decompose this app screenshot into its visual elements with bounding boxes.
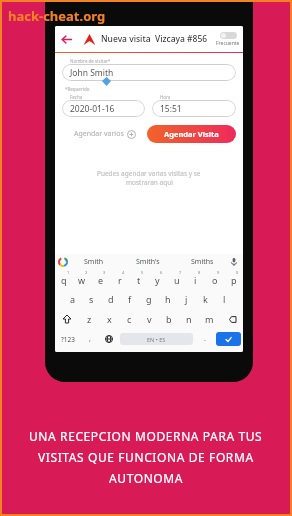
staticText: t	[137, 274, 141, 286]
button[interactable]: m	[199, 309, 219, 329]
staticText: 1	[67, 270, 70, 275]
staticText: Fecha	[70, 94, 83, 100]
button[interactable]: Shift	[55, 315, 79, 323]
button[interactable]: Backspace	[219, 315, 243, 324]
staticText: e	[98, 274, 104, 286]
button[interactable]: Google	[59, 258, 67, 266]
staticText: hack-cheat.org	[8, 7, 106, 25]
button[interactable]: ?123	[55, 335, 80, 344]
staticText: n	[186, 313, 192, 325]
button[interactable]: Period	[195, 334, 214, 344]
button[interactable]: d	[101, 289, 120, 309]
button[interactable]: h	[158, 289, 177, 309]
staticText: Smith's	[136, 257, 160, 267]
button[interactable]: x	[99, 309, 119, 329]
button[interactable]: EN • ES	[120, 333, 193, 345]
button[interactable]: 0	[224, 269, 243, 289]
staticText: 4	[122, 270, 125, 275]
staticText: s	[89, 293, 94, 305]
button[interactable]: Smiths	[175, 257, 229, 267]
staticText: 2	[85, 270, 88, 275]
button[interactable]: Comma	[80, 334, 99, 344]
button[interactable]: a	[63, 289, 82, 309]
button[interactable]: 8	[186, 269, 205, 289]
staticText: v	[147, 313, 152, 325]
staticText: h	[165, 293, 171, 305]
button[interactable]: 7	[167, 269, 186, 289]
button[interactable]: 3	[91, 269, 110, 289]
button[interactable]: Frecuente	[216, 32, 240, 47]
button[interactable]: b	[159, 309, 179, 329]
staticText: m	[205, 313, 214, 325]
staticText: b	[166, 313, 172, 325]
button[interactable]: Agendar varios	[62, 129, 147, 139]
button[interactable]: 2020-01-16	[62, 100, 145, 117]
staticText: Agendar Visita	[164, 129, 219, 139]
button[interactable]: 6	[148, 269, 167, 289]
staticText: j	[185, 293, 188, 305]
staticText: u	[174, 274, 180, 286]
staticText: 5	[141, 270, 144, 275]
staticText: 2020-01-16	[70, 103, 115, 115]
button[interactable]: v	[139, 309, 159, 329]
button[interactable]: John Smith	[62, 64, 236, 81]
staticText: mostraran aqui	[126, 178, 173, 187]
button[interactable]: Voice input	[229, 257, 239, 267]
staticText: 7	[179, 270, 182, 275]
staticText: Agendar varios	[74, 129, 124, 139]
staticText: i	[194, 274, 197, 286]
button[interactable]: z	[79, 309, 99, 329]
staticText: q	[61, 274, 67, 286]
staticText: w	[78, 274, 86, 286]
staticText: 3	[103, 270, 106, 275]
staticText: Frecuente	[216, 40, 240, 47]
staticText: x	[107, 313, 112, 325]
button[interactable]: 9	[205, 269, 224, 289]
button[interactable]: g	[139, 289, 158, 309]
staticText: *Requerido	[65, 86, 90, 92]
button[interactable]: Language	[99, 335, 118, 343]
button[interactable]: f	[120, 289, 139, 309]
staticText: ?123	[61, 335, 75, 344]
button[interactable]: 15:51	[152, 100, 236, 117]
staticText: Puedes agendar varias visitas y se	[97, 169, 201, 178]
staticText: d	[108, 293, 114, 305]
staticText: 6	[160, 270, 163, 275]
staticText: 9	[217, 270, 220, 275]
button[interactable]: Agendar Visita	[147, 125, 236, 143]
button[interactable]: 5	[129, 269, 148, 289]
staticText: r	[118, 274, 122, 286]
staticText: VISITAS QUE FUNCIONA DE FORMA	[38, 449, 254, 465]
button[interactable]: n	[179, 309, 199, 329]
staticText: g	[146, 293, 152, 305]
staticText: a	[70, 293, 76, 305]
button[interactable]: l	[215, 289, 234, 309]
staticText: f	[128, 293, 132, 305]
button[interactable]: k	[196, 289, 215, 309]
staticText: k	[203, 293, 208, 305]
staticText: Smiths	[191, 257, 214, 267]
staticText: 8	[198, 270, 201, 275]
staticText: AUTONOMA	[109, 470, 184, 486]
button[interactable]: Back	[55, 28, 77, 50]
staticText: ,	[89, 334, 91, 344]
button[interactable]: Smith	[67, 257, 121, 267]
staticText: y	[155, 274, 160, 286]
button[interactable]: Enter	[216, 332, 241, 346]
button[interactable]: 2	[73, 269, 91, 289]
staticText: Hora	[160, 94, 171, 100]
staticText: p	[231, 274, 237, 286]
button[interactable]: 4	[110, 269, 129, 289]
staticText: EN • ES	[147, 336, 166, 343]
staticText: o	[212, 274, 218, 286]
button[interactable]: s	[82, 289, 101, 309]
staticText: z	[87, 313, 92, 325]
staticText: UNA RECEPCION MODERNA PARA TUS	[29, 428, 263, 444]
button[interactable]: c	[119, 309, 139, 329]
staticText: Nueva visita Vizcaya #856	[101, 33, 208, 45]
staticText: l	[223, 293, 226, 305]
button[interactable]: 1	[55, 269, 73, 289]
button[interactable]: j	[177, 289, 196, 309]
staticText: c	[127, 313, 132, 325]
button[interactable]: Smith's	[121, 257, 175, 267]
